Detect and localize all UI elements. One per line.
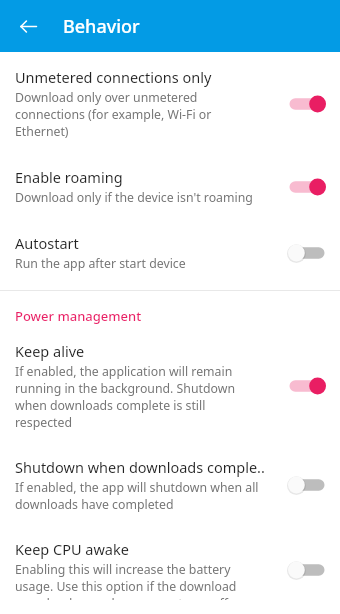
- staticText: Keep alive: [15, 341, 85, 361]
- staticText: Shutdown when downloads comple..: [15, 457, 265, 477]
- staticText: If enabled, the app will shutdown when a…: [15, 479, 259, 513]
- button[interactable]: Shutdown when downloads comple..: [0, 445, 340, 527]
- staticText: Behavior: [63, 14, 140, 39]
- button[interactable]: Autostart: [0, 220, 340, 284]
- staticText: Power management: [15, 307, 142, 325]
- staticText: Autostart: [15, 233, 79, 253]
- staticText: Enable roaming: [15, 167, 123, 187]
- staticText: Download only over unmetered connections…: [15, 89, 212, 140]
- button[interactable]: Enable roaming: [0, 154, 340, 220]
- button[interactable]: Keep CPU awake: [0, 527, 340, 614]
- staticText: Enabling this will increase the battery …: [15, 561, 237, 600]
- button[interactable]: Unmetered connections only: [0, 61, 340, 154]
- staticText: Download only if the device isn't roamin…: [15, 189, 253, 206]
- staticText: Keep CPU awake: [15, 539, 129, 559]
- staticText: Run the app after start device: [15, 255, 186, 272]
- button[interactable]: Back: [11, 9, 45, 43]
- staticText: Unmetered connections only: [15, 67, 212, 87]
- button[interactable]: Keep alive: [0, 337, 340, 445]
- staticText: If enabled, the application will remain …: [15, 363, 235, 431]
